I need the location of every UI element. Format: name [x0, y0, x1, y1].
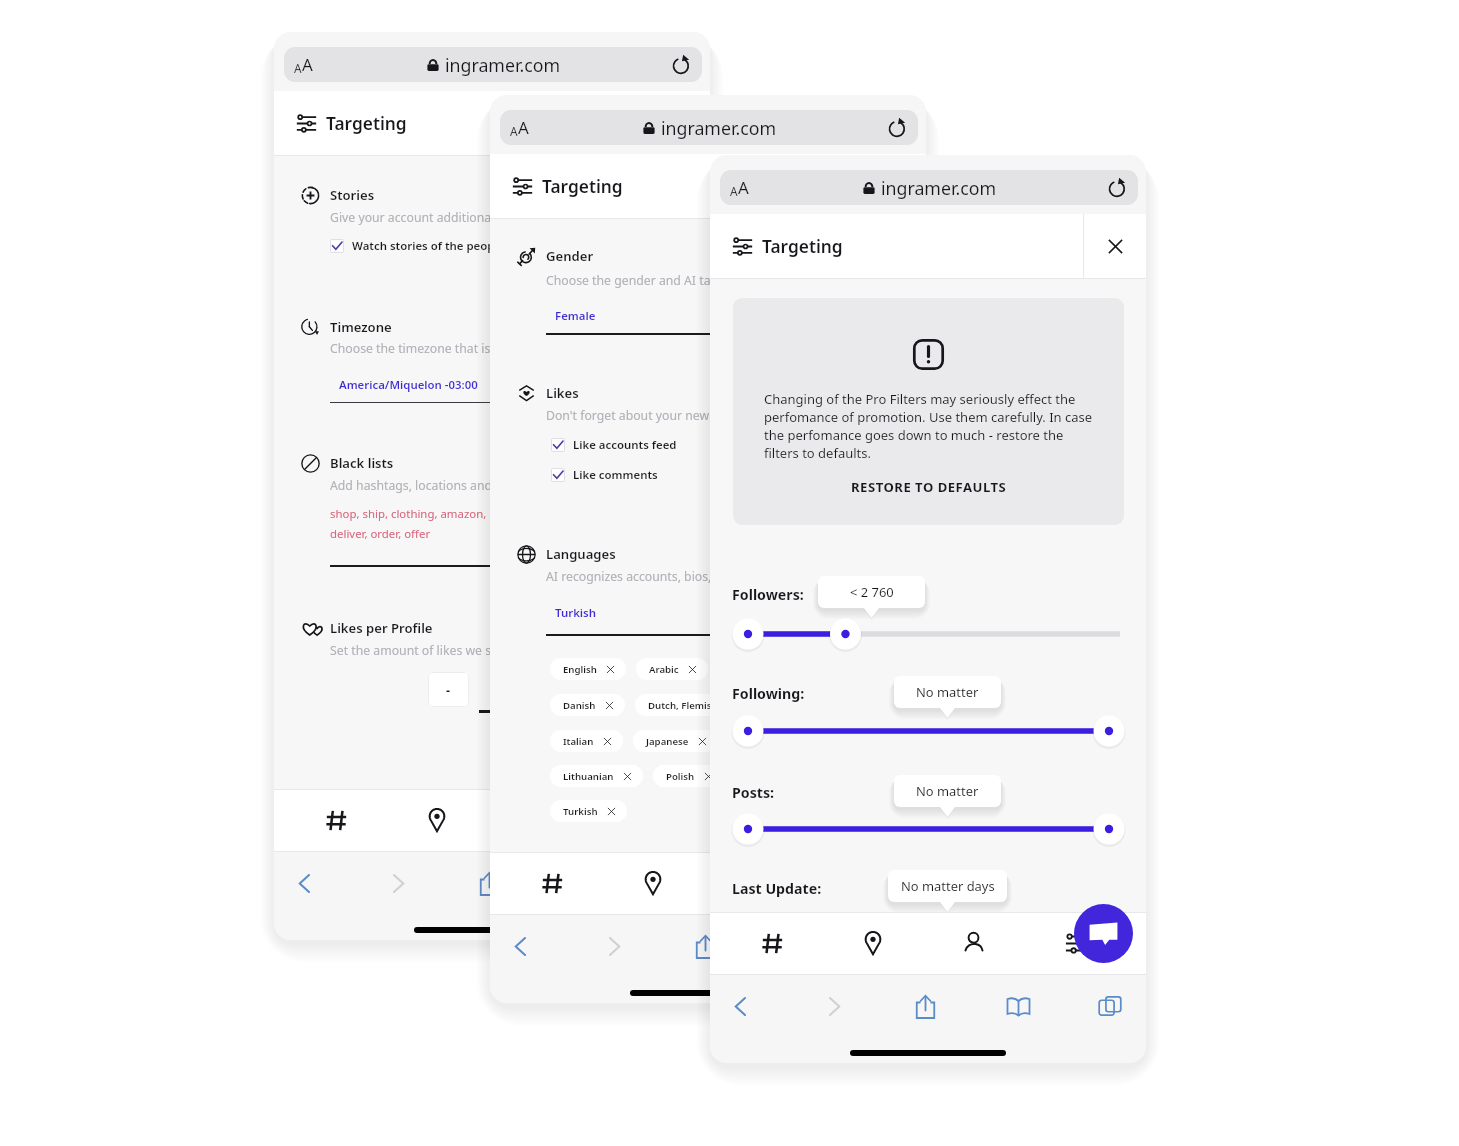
staticText: AI recognizes accounts, bios,: [546, 568, 712, 585]
staticText: Lithuanian: [563, 770, 614, 783]
button[interactable]: Bookmarks: [997, 985, 1039, 1027]
staticText: A: [302, 53, 313, 76]
button[interactable]: Share: [684, 925, 726, 967]
staticText: Black lists: [330, 454, 394, 472]
staticText: ingramer.com: [881, 176, 997, 200]
button[interactable]: Bookmarks: [777, 925, 819, 967]
button[interactable]: Forward: [377, 862, 419, 904]
button[interactable]: Share: [468, 862, 510, 904]
staticText: Add hashtags, locations and: [330, 477, 493, 494]
staticText: deliver, order, offer: [330, 526, 431, 542]
button[interactable]: Forward: [813, 985, 855, 1027]
button[interactable]: Danish: [550, 694, 625, 716]
button[interactable]: Accounts: [732, 861, 776, 905]
staticText: Female: [555, 308, 596, 324]
staticText: ingramer.com: [661, 116, 777, 140]
button[interactable]: Dutch, Flemish: [635, 694, 747, 716]
button[interactable]: Locations: [851, 921, 895, 965]
staticText: -: [446, 681, 451, 698]
staticText: A: [294, 60, 302, 76]
button[interactable]: Locations: [415, 798, 459, 842]
button[interactable]: Polish: [653, 765, 724, 787]
staticText: < 2 760: [850, 583, 894, 601]
staticText: No matter: [916, 683, 979, 701]
staticText: Likes per Profile: [330, 619, 433, 637]
staticText: ingramer.com: [445, 53, 561, 77]
staticText: Italian: [563, 735, 594, 748]
staticText: Like accounts feed: [573, 437, 677, 453]
button[interactable]: Tabs: [1089, 985, 1131, 1027]
button[interactable]: Hashtags: [530, 861, 574, 905]
staticText: Followers:: [732, 585, 804, 604]
staticText: Choose the gender and AI targ: [546, 272, 723, 289]
staticText: A: [738, 176, 749, 199]
staticText: RESTORE TO DEFAULTS: [851, 478, 1007, 496]
staticText: A: [518, 116, 529, 139]
staticText: Set the amount of likes we sh: [330, 642, 499, 659]
button[interactable]: RESTORE TO DEFAULTS: [733, 474, 1124, 500]
staticText: Choose the timezone that is: [330, 340, 491, 357]
staticText: Turkish: [563, 805, 598, 818]
button[interactable]: Accounts: [952, 921, 996, 965]
button[interactable]: Share: [904, 985, 946, 1027]
staticText: Gender: [546, 247, 594, 265]
staticText: America/Miquelon -03:00: [339, 377, 478, 393]
staticText: English: [563, 663, 597, 676]
button[interactable]: Italian: [550, 730, 623, 752]
staticText: Danish: [563, 699, 596, 712]
staticText: Targeting: [542, 174, 623, 198]
staticText: No matter days: [901, 877, 995, 895]
button[interactable]: Back: [719, 985, 761, 1027]
staticText: A: [730, 183, 738, 199]
button[interactable]: Hashtags: [314, 798, 358, 842]
button[interactable]: Chat: [1074, 904, 1133, 963]
staticText: Don't forget about your new fo: [546, 407, 724, 424]
button[interactable]: Turkish: [550, 800, 627, 822]
staticText: Turkish: [555, 605, 596, 621]
button[interactable]: Back: [283, 862, 325, 904]
staticText: shop, ship, clothing, amazon,: [330, 506, 487, 522]
button[interactable]: Close: [1095, 226, 1135, 266]
button[interactable]: Tabs: [653, 862, 695, 904]
staticText: Last Update:: [732, 879, 822, 898]
staticText: Watch stories of the people: [352, 238, 505, 254]
staticText: Languages: [546, 545, 616, 563]
button[interactable]: Arabic: [636, 658, 708, 680]
staticText: Changing of the Pro Filters may seriousl…: [764, 390, 1124, 462]
button[interactable]: Forward: [593, 925, 635, 967]
staticText: Targeting: [326, 111, 407, 135]
staticText: Give your account additional: [330, 209, 495, 226]
staticText: Japanese: [646, 735, 689, 748]
button[interactable]: Hashtags: [750, 921, 794, 965]
staticText: No matter: [916, 782, 979, 800]
button[interactable]: Lithuanian: [550, 765, 643, 787]
button[interactable]: Locations: [631, 861, 675, 905]
button[interactable]: Bookmarks: [561, 862, 603, 904]
button[interactable]: Back: [499, 925, 541, 967]
button[interactable]: English: [550, 658, 626, 680]
staticText: Targeting: [762, 234, 843, 258]
button[interactable]: Tabs: [869, 925, 911, 967]
button[interactable]: Settings: [1054, 921, 1098, 965]
staticText: Posts:: [732, 783, 775, 802]
staticText: Polish: [666, 770, 695, 783]
staticText: Arabic: [649, 663, 679, 676]
staticText: Timezone: [330, 318, 392, 336]
button[interactable]: Japanese: [633, 730, 718, 752]
staticText: A: [510, 123, 518, 139]
staticText: Following:: [732, 684, 805, 703]
staticText: Stories: [330, 186, 375, 204]
staticText: Dutch, Flemish: [648, 699, 718, 712]
staticText: Like comments: [573, 467, 658, 483]
button[interactable]: Decrease likes: [428, 672, 469, 707]
staticText: Likes: [546, 384, 579, 402]
